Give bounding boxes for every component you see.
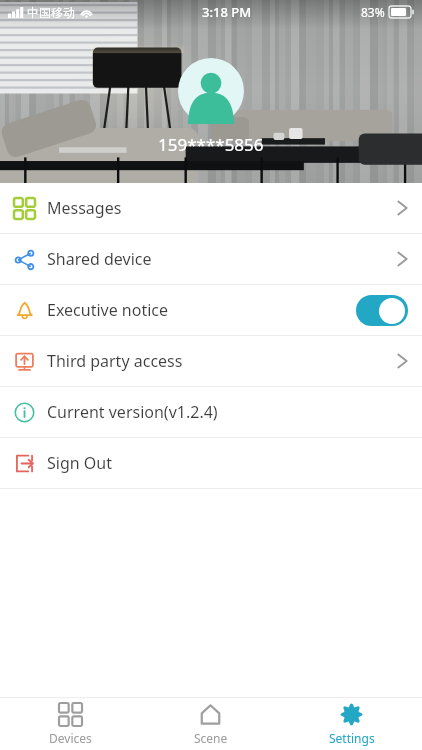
button[interactable]: Sign Out: [0, 438, 422, 488]
button[interactable]: Settings: [281, 698, 422, 750]
button[interactable]: Devices: [0, 698, 140, 750]
button[interactable]: Current version(v1.2.4): [0, 387, 422, 437]
staticText: Current version(v1.2.4): [47, 401, 218, 423]
button[interactable]: Executive notice toggle: [356, 295, 408, 326]
staticText: Executive notice: [47, 299, 169, 321]
staticText: 中国移动: [27, 5, 75, 20]
staticText: 159****5856: [158, 133, 264, 156]
staticText: Scene: [194, 730, 228, 746]
staticText: Third party access: [47, 350, 183, 372]
staticText: 83%: [361, 4, 385, 20]
staticText: Messages: [47, 197, 122, 219]
staticText: 3:18 PM: [202, 3, 252, 21]
button[interactable]: Scene: [140, 698, 281, 750]
staticText: Settings: [329, 730, 375, 746]
button[interactable]: Executive notice: [0, 285, 422, 335]
staticText: Devices: [49, 730, 92, 746]
staticText: Shared device: [47, 248, 152, 270]
button[interactable]: Shared device: [0, 234, 422, 284]
staticText: Sign Out: [47, 452, 112, 474]
button[interactable]: Messages: [0, 183, 422, 233]
button[interactable]: Third party access: [0, 336, 422, 386]
